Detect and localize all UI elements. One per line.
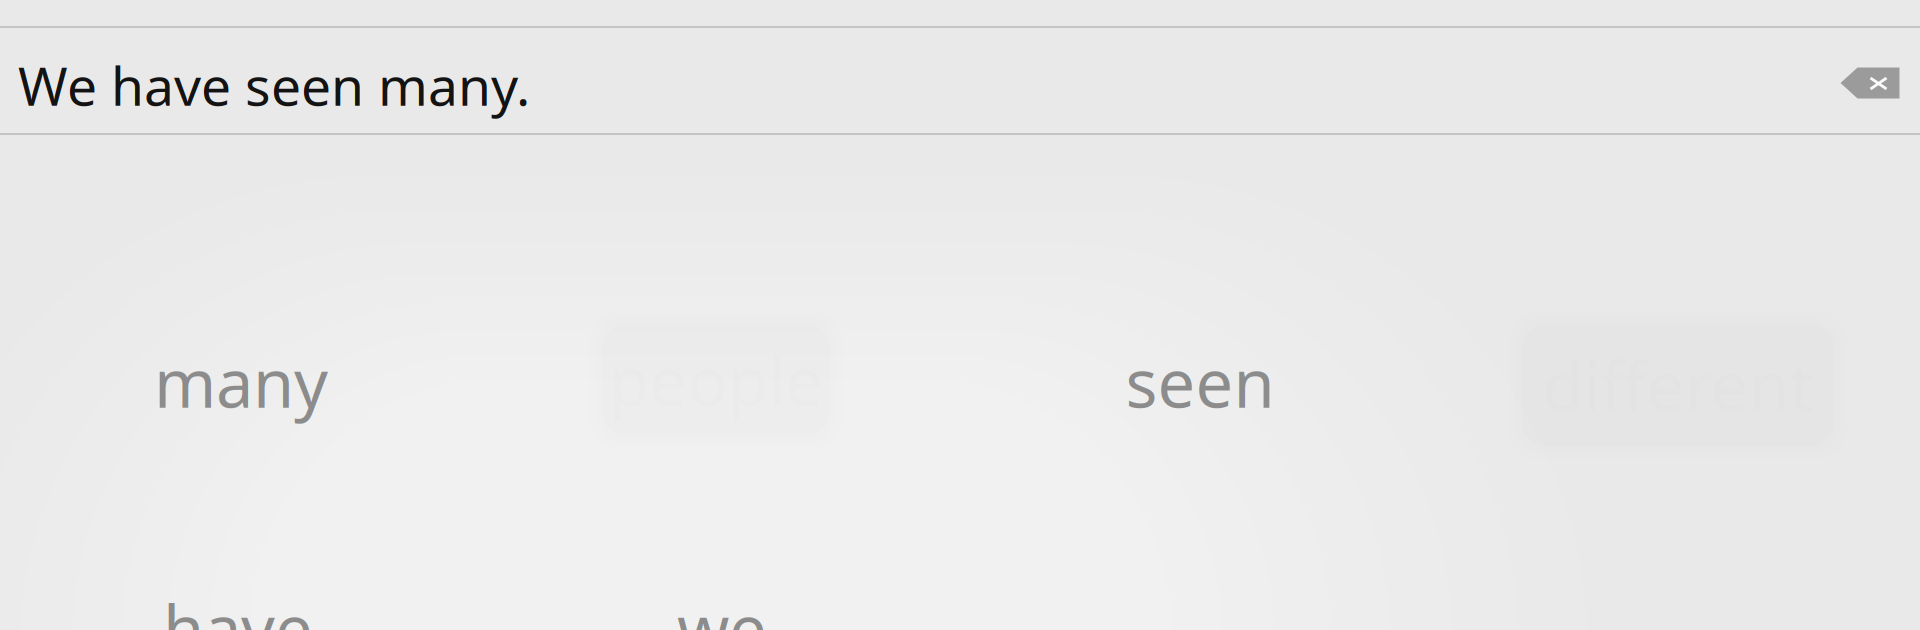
staticText: seen [1125, 338, 1274, 426]
button[interactable]: seen [1120, 330, 1280, 434]
staticText: have [163, 584, 313, 630]
button[interactable]: many [146, 330, 336, 434]
staticText: we [677, 584, 767, 630]
staticText: many [154, 338, 328, 426]
button[interactable]: we [662, 576, 782, 630]
button[interactable]: Delete [1840, 67, 1899, 98]
staticText: We have seen many. [18, 50, 530, 120]
button[interactable]: have [153, 576, 323, 630]
